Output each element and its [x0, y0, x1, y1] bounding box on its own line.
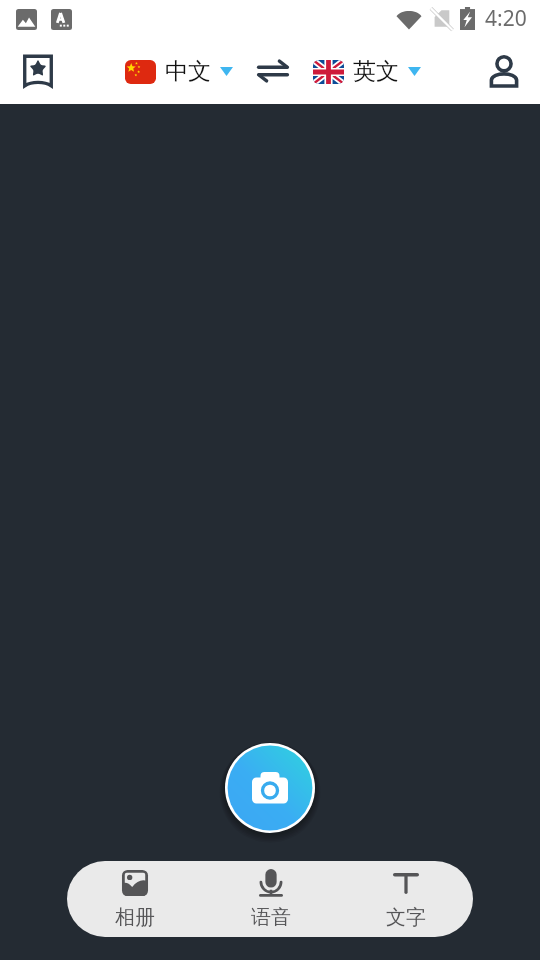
button[interactable]: Favorites: [13, 46, 63, 96]
staticText: 中文: [165, 57, 211, 86]
staticText: 语音: [251, 905, 291, 930]
staticText: 4:20: [485, 4, 527, 33]
button[interactable]: Camera translate: [222, 740, 318, 836]
button[interactable]: 中文: [123, 51, 235, 92]
staticText: 相册: [115, 905, 155, 930]
staticText: 文字: [386, 905, 426, 930]
button[interactable]: Profile: [479, 46, 529, 96]
button[interactable]: 相册: [67, 861, 203, 937]
staticText: 英文: [353, 57, 399, 86]
button[interactable]: 文字: [338, 861, 473, 937]
button[interactable]: 语音: [203, 861, 338, 937]
button[interactable]: Swap languages: [251, 49, 295, 93]
button[interactable]: 英文: [311, 51, 423, 92]
